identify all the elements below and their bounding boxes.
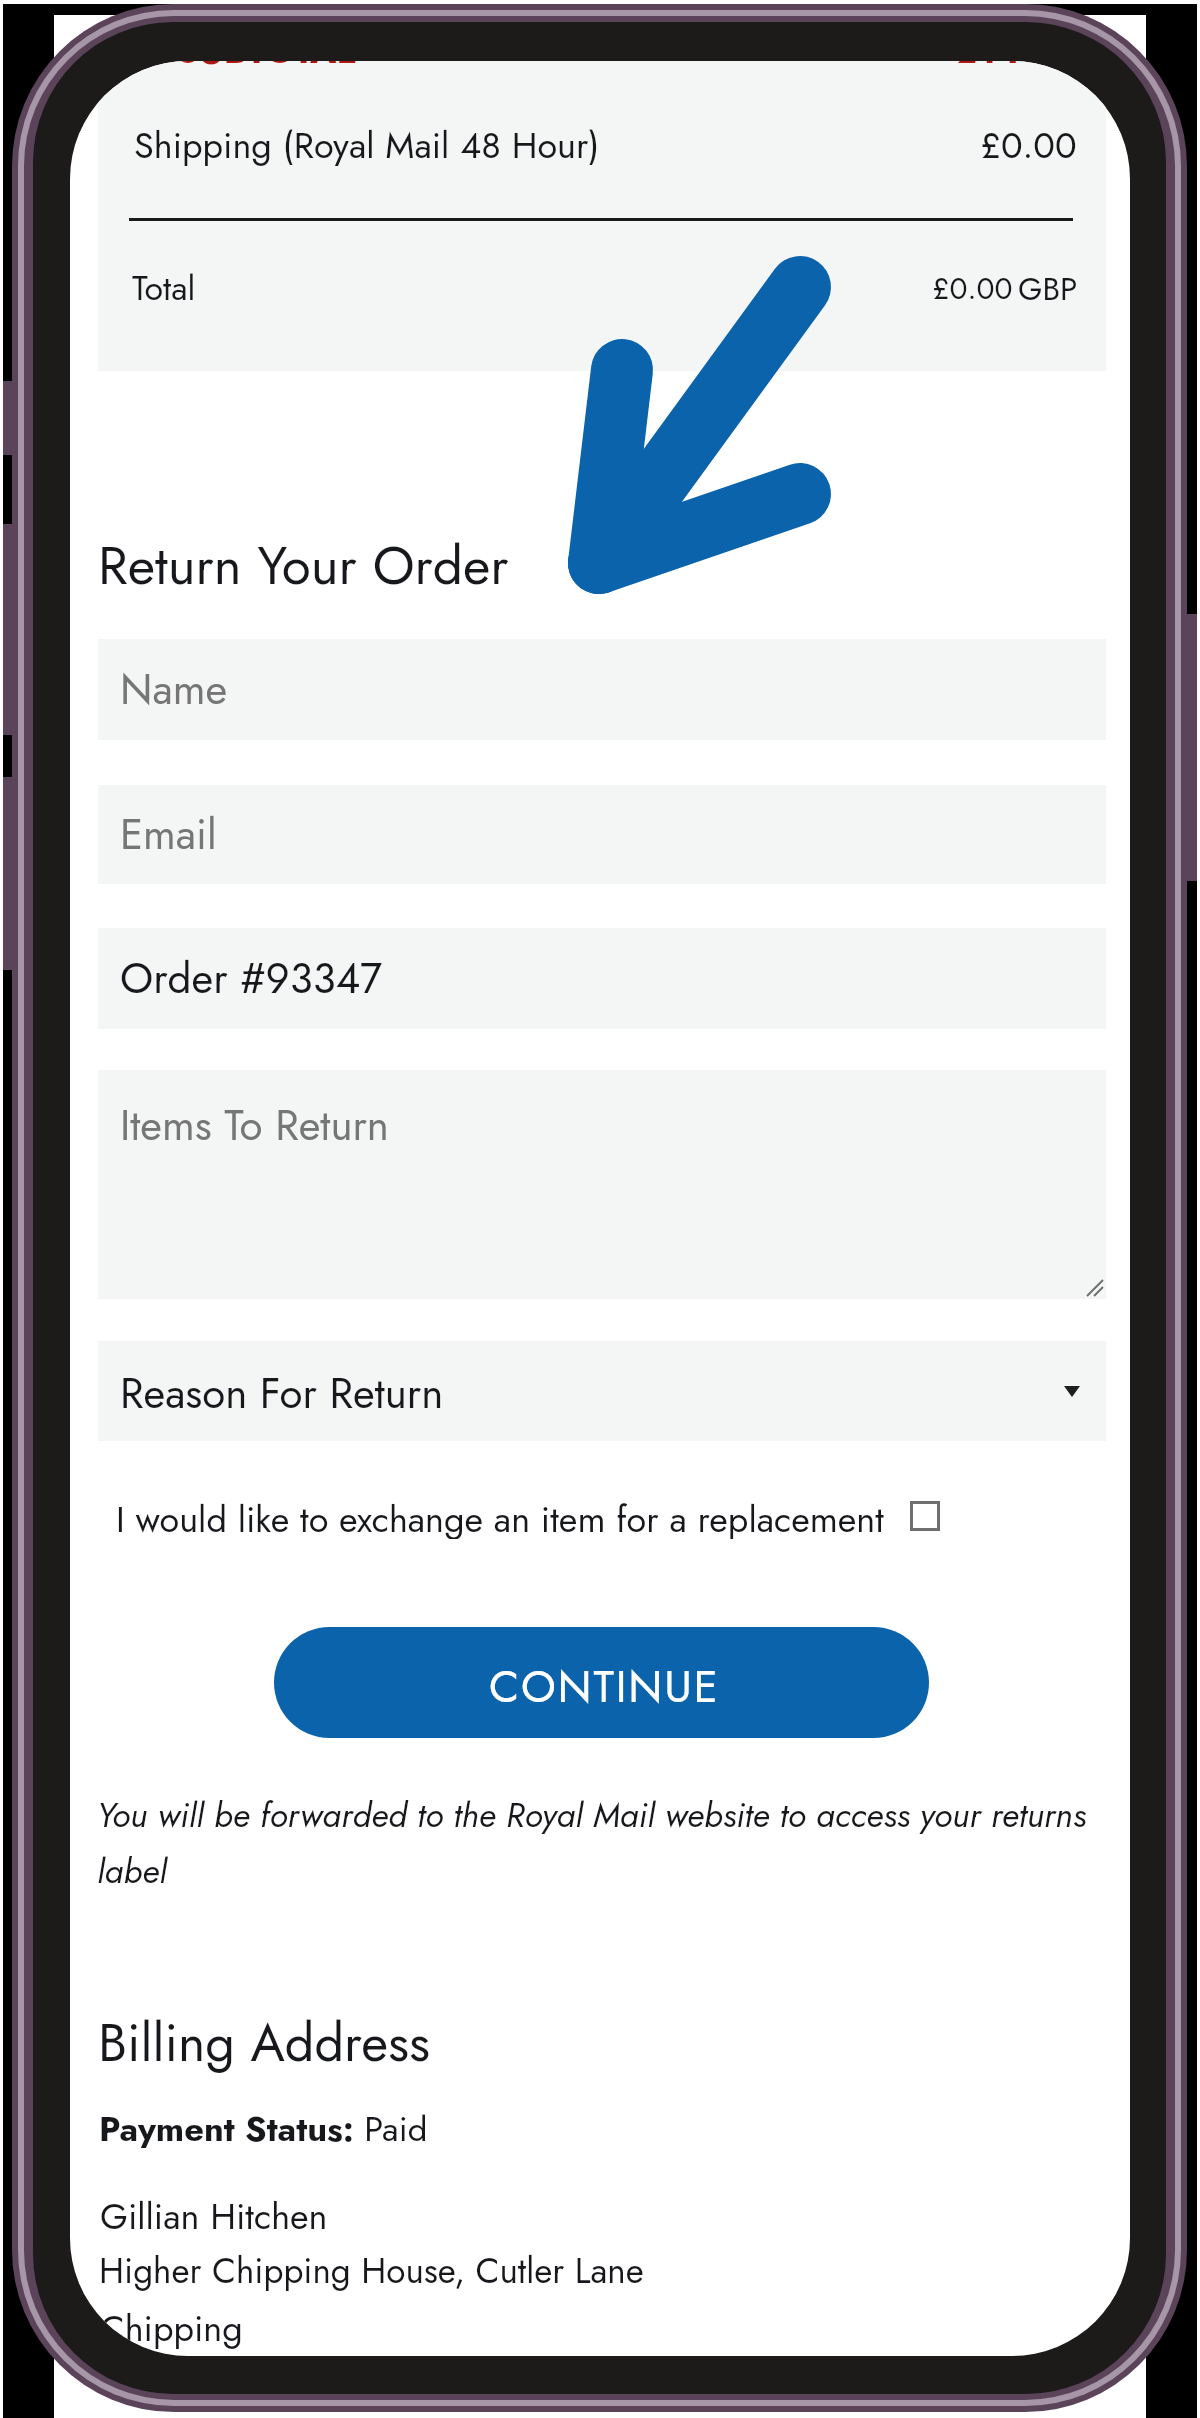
staticText: £0.00 [932, 267, 1013, 310]
staticText: Order #93347 [120, 948, 383, 1009]
button[interactable]: Email [98, 785, 1106, 884]
staticText: Items To Return [120, 1095, 389, 1156]
staticText: £14 [956, 61, 1022, 76]
button[interactable]: Order #93347 [98, 928, 1106, 1029]
staticText: Gillian Hitchen [100, 2190, 328, 2242]
button[interactable]: Reason For Return [98, 1341, 1106, 1441]
button[interactable]: Name [98, 639, 1106, 740]
staticText: CONTINUE [489, 1655, 720, 1719]
staticText: Payment Status: Paid [99, 2104, 428, 2154]
staticText: SUBTOTAL [176, 61, 356, 76]
staticText: GBP [1018, 266, 1078, 312]
staticText: Higher Chipping House, Cutler Lane [99, 2246, 644, 2297]
staticText: Email [120, 804, 217, 865]
staticText: Name [120, 659, 228, 720]
staticText: You will be forwarded to the Royal Mail … [97, 1791, 1102, 1895]
button[interactable]: I would like to exchange an item for a r… [116, 1493, 940, 1539]
staticText: Billing Address [98, 2005, 430, 2080]
button[interactable]: Items To Return [98, 1070, 1106, 1299]
staticText: I would like to exchange an item for a r… [116, 1493, 884, 1539]
staticText: Shipping (Royal Mail 48 Hour) [134, 119, 600, 171]
staticText: £0.00 [980, 119, 1077, 171]
staticText: Total [132, 264, 196, 313]
staticText: Chipping [100, 2302, 243, 2354]
staticText: Reason For Return [120, 1363, 444, 1424]
staticText: Return Your Order [98, 527, 509, 604]
button[interactable]: CONTINUE [274, 1627, 929, 1738]
